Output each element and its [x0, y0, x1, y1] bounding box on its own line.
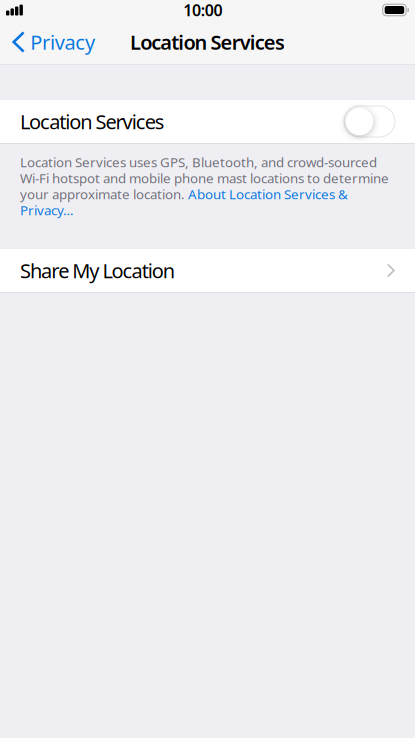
button[interactable]: Share My Location [0, 248, 415, 292]
button[interactable]: Privacy… [20, 202, 74, 218]
staticText: Location Services [20, 108, 165, 135]
button[interactable]: Privacy [0, 20, 103, 64]
staticText: Share My Location [20, 257, 175, 284]
staticText: About Location Services & [188, 185, 348, 203]
staticText: 10:00 [183, 0, 222, 21]
button[interactable]: Location Services [0, 99, 415, 143]
staticText: Privacy [30, 29, 95, 55]
staticText: Location Services uses GPS, Bluetooth, a… [20, 153, 377, 171]
staticText: Wi-Fi hotspot and mobile phone mast loca… [20, 169, 389, 187]
staticText: Privacy… [20, 201, 74, 219]
button[interactable]: About Location Services & [188, 185, 348, 203]
staticText: Location Services [130, 29, 285, 55]
staticText: your approximate location. [20, 185, 188, 203]
